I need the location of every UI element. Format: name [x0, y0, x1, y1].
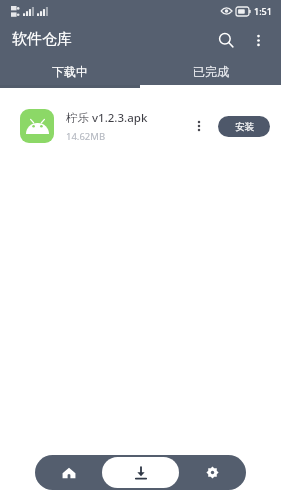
button[interactable]: Settings [179, 455, 246, 490]
button[interactable]: 下载中 [0, 57, 140, 85]
button[interactable]: 安装 [218, 116, 270, 137]
staticText: 已完成 [193, 64, 229, 79]
button[interactable]: More options [243, 25, 273, 55]
button[interactable]: Item options [186, 113, 212, 139]
staticText: 安装 [235, 121, 254, 133]
staticText: 软件仓库 [12, 30, 72, 49]
staticText: 柠乐 v1.2.3.apk [66, 110, 148, 126]
button[interactable]: 已完成 [140, 57, 281, 85]
button[interactable]: Downloads [102, 457, 179, 488]
staticText: 14.62MB [66, 130, 106, 143]
button[interactable]: 柠乐 v1.2.3.apk [0, 102, 281, 150]
staticText: 下载中 [52, 64, 88, 79]
staticText: 1:51 [254, 5, 272, 17]
button[interactable]: Search [209, 23, 243, 57]
button[interactable]: Home [35, 455, 102, 490]
